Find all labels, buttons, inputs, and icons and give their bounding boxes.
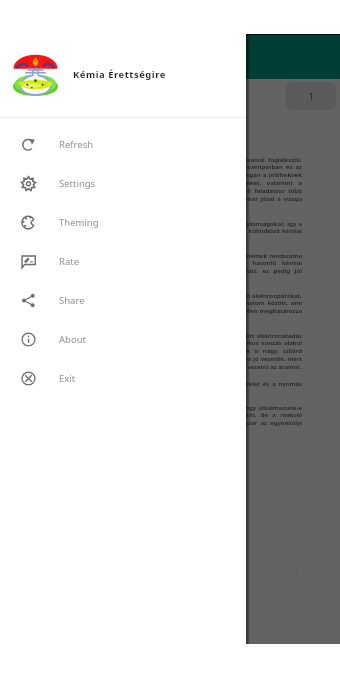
button[interactable]: Refresh [0, 125, 246, 164]
staticText: Rate [59, 255, 80, 268]
button[interactable]: Theming [0, 203, 246, 242]
staticText: Refresh [59, 138, 94, 151]
button[interactable]: About [0, 320, 246, 359]
staticText: Fontos tudni, hogy az atomok elektronsze… [8, 219, 302, 243]
button[interactable]: Rate [0, 242, 246, 281]
button[interactable]: Kémia Érettségire [0, 44, 246, 104]
staticText: Exit [59, 372, 76, 385]
staticText: A kovalens kötés esetén a kötésben részt… [8, 291, 302, 323]
button[interactable]: Page 1 tab [286, 82, 336, 110]
staticText: A reakciósebesség függ a hőmérséklettől,… [8, 403, 302, 435]
staticText: About [59, 333, 86, 346]
staticText: Theming [59, 216, 99, 229]
staticText: 1 [309, 91, 314, 102]
staticText: Kémia Érettségire [73, 68, 166, 81]
staticText: Share [59, 294, 85, 307]
button[interactable]: Share [0, 281, 246, 320]
staticText: 2 [295, 568, 299, 577]
button[interactable]: Exit [0, 359, 246, 398]
staticText: A periódusos rendszer a kémiai elemek re… [8, 251, 302, 283]
button[interactable]: Settings [0, 164, 246, 203]
staticText: Az ionos kötés akkor jön létre, amikor e… [8, 331, 302, 371]
staticText: A halmazállapot-változások mindig energi… [8, 379, 302, 395]
staticText: A kémia tudománya az anyagok szerkezetév… [8, 155, 302, 211]
staticText: Settings [59, 177, 96, 190]
